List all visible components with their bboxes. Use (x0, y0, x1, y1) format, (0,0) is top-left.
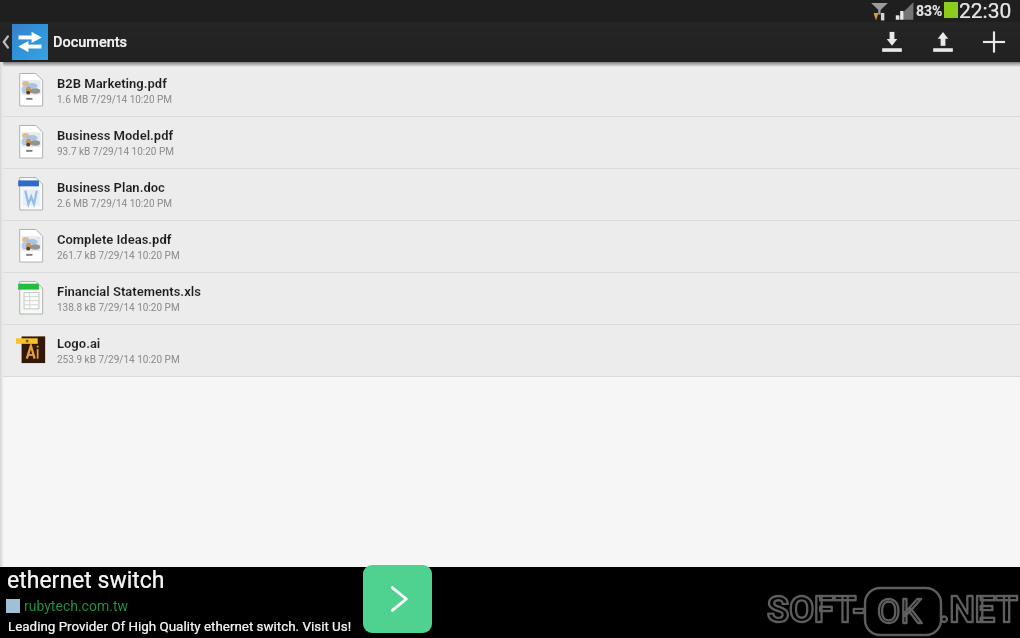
staticText: Business Model.pdf (57, 128, 174, 143)
staticText: 1.6 MB 7/29/14 10:20 PM (57, 94, 173, 106)
staticText: Financial Statements.xls (57, 284, 201, 299)
staticText: 93.7 kB 7/29/14 10:20 PM (57, 146, 175, 158)
button[interactable]: Add (968, 22, 1019, 62)
staticText: Leading Provider Of High Quality etherne… (8, 619, 352, 635)
button[interactable]: Upload (917, 22, 968, 62)
staticText: 2.6 MB 7/29/14 10:20 PM (57, 198, 173, 210)
button[interactable]: Download (866, 22, 917, 62)
button[interactable]: Complete Ideas.pdf (0, 221, 1020, 273)
button[interactable]: Logo.ai (0, 325, 1020, 377)
staticText: Complete Ideas.pdf (57, 232, 172, 247)
staticText: 22:30 (959, 0, 1012, 21)
button[interactable]: Documents (0, 22, 136, 62)
button[interactable]: B2B Marketing.pdf (0, 65, 1020, 117)
staticText: B2B Marketing.pdf (57, 76, 167, 91)
button[interactable]: Business Plan.doc (0, 169, 1020, 221)
staticText: .NET (939, 589, 1018, 631)
button[interactable]: Business Model.pdf (0, 117, 1020, 169)
staticText: Documents (53, 34, 128, 51)
staticText: Business Plan.doc (57, 180, 165, 195)
button[interactable]: Open advertisement (363, 565, 432, 633)
staticText: 261.7 kB 7/29/14 10:20 PM (57, 250, 180, 262)
staticText: ethernet switch (7, 567, 165, 594)
staticText: rubytech.com.tw (24, 598, 128, 614)
staticText: 83% (916, 3, 943, 19)
staticText: Logo.ai (57, 336, 101, 351)
button[interactable]: Financial Statements.xls (0, 273, 1020, 325)
staticText: 253.9 kB 7/29/14 10:20 PM (57, 354, 180, 366)
staticText: OK (877, 591, 922, 631)
staticText: SOFT- (767, 589, 867, 631)
staticText: 138.8 kB 7/29/14 10:20 PM (57, 302, 180, 314)
